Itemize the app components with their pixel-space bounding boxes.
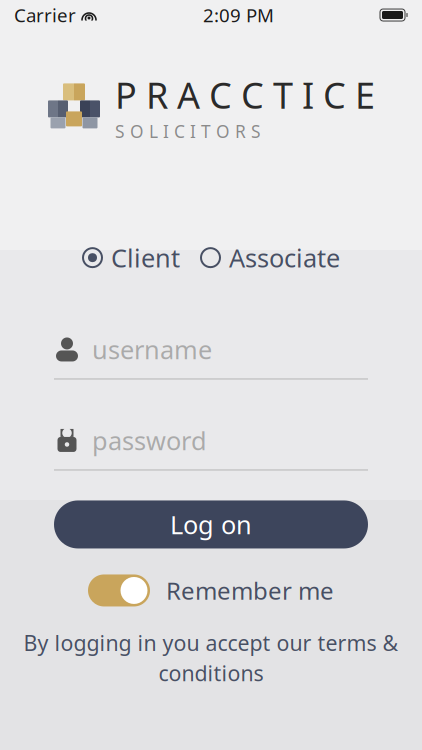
staticText: By logging in you accept our terms & bbox=[23, 628, 398, 657]
staticText: Carrier bbox=[14, 3, 76, 27]
staticText: P R A C C T I C E bbox=[115, 71, 375, 119]
staticText: Log on bbox=[170, 508, 252, 541]
staticText: username bbox=[92, 333, 212, 366]
staticText: Associate bbox=[229, 241, 340, 274]
button[interactable]: Remember me bbox=[88, 574, 150, 606]
button[interactable]: Client bbox=[82, 235, 180, 280]
button[interactable]: By logging in you accept our terms & bbox=[23, 628, 398, 687]
staticText: password bbox=[92, 424, 207, 457]
button[interactable]: Associate bbox=[200, 235, 340, 280]
staticText: 2:09 PM bbox=[203, 3, 274, 27]
staticText: conditions bbox=[158, 659, 263, 687]
staticText: Client bbox=[111, 241, 180, 274]
staticText: Remember me bbox=[166, 574, 334, 606]
button[interactable]: Log on bbox=[54, 500, 368, 548]
staticText: S O L I C I T O R S bbox=[115, 120, 261, 143]
